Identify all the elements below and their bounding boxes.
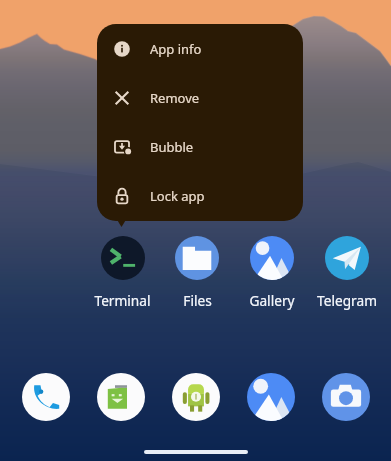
- staticText: Files: [183, 291, 212, 310]
- staticText: Remove: [150, 89, 200, 107]
- button[interactable]: app: [172, 373, 220, 421]
- staticText: App info: [150, 40, 202, 58]
- staticText: Lock app: [150, 187, 205, 205]
- button[interactable]: Files: [160, 236, 234, 310]
- button[interactable]: Telegram: [310, 236, 384, 310]
- button[interactable]: Gallery: [235, 236, 309, 310]
- button[interactable]: app: [97, 373, 145, 421]
- button[interactable]: Lock app: [97, 171, 303, 220]
- button[interactable]: Remove: [97, 73, 303, 122]
- button[interactable]: app: [22, 373, 70, 421]
- staticText: Bubble: [150, 138, 194, 156]
- button[interactable]: App info: [97, 24, 303, 73]
- button[interactable]: app: [247, 373, 295, 421]
- staticText: Telegram: [317, 291, 377, 310]
- staticText: Gallery: [249, 291, 295, 310]
- button[interactable]: app: [322, 373, 370, 421]
- button[interactable]: Terminal: [85, 236, 159, 310]
- staticText: Terminal: [94, 291, 151, 310]
- button[interactable]: Bubble: [97, 122, 303, 171]
